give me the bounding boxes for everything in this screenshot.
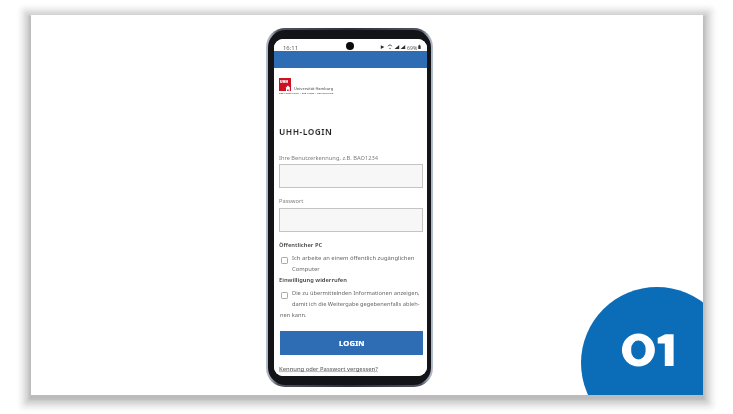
staticText: Die zu übermittelnden Informationen anze… — [292, 289, 420, 297]
staticText: Universität Hamburg — [294, 86, 334, 91]
button[interactable]: Checkbox — [281, 292, 288, 299]
button[interactable] — [279, 164, 423, 188]
staticText: Passwort — [279, 197, 304, 205]
button[interactable]: Kennung oder Passwort vergessen? — [279, 365, 378, 373]
staticText: 69% — [407, 44, 418, 51]
staticText: DER FORSCHUNG | DER LEHRE | DER BILDUNG — [279, 92, 334, 95]
button[interactable]: Checkbox — [281, 257, 288, 264]
staticText: 16:11 — [283, 44, 299, 52]
staticText: damit ich die Weitergabe gegebenenfalls … — [292, 300, 420, 308]
staticText: LOGIN — [339, 338, 365, 348]
staticText: UHH-LOGIN — [279, 126, 333, 137]
staticText: Ihre Benutzerkennung, z.B. BAO1234 — [279, 154, 378, 162]
staticText: Einwilligung widerrufen — [279, 276, 347, 284]
button[interactable] — [279, 208, 423, 232]
staticText: UHH — [280, 79, 289, 84]
staticText: nen kann. — [280, 311, 307, 319]
button[interactable]: Slide number 01 — [581, 287, 703, 395]
button[interactable]: LOGIN — [280, 331, 423, 355]
staticText: Kennung oder Passwort vergessen? — [279, 365, 378, 373]
staticText: Öffentlicher PC — [279, 241, 323, 249]
staticText: Ich arbeite an einem öffentlich zugängli… — [292, 254, 415, 262]
staticText: Computer — [292, 265, 320, 273]
